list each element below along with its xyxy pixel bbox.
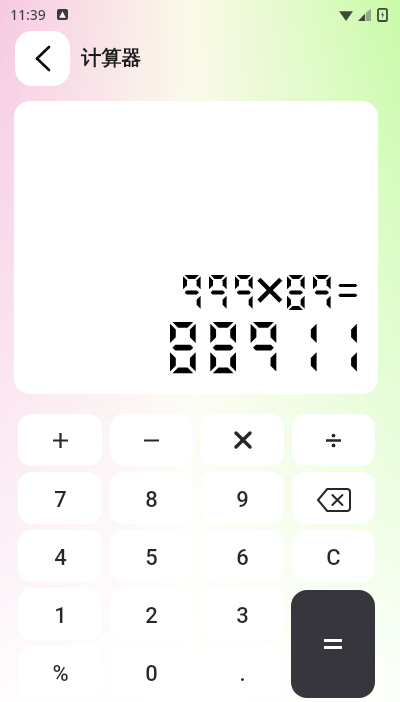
staticText: 0 [145, 661, 158, 687]
staticText: 1 [54, 603, 67, 629]
staticText: 7 [54, 487, 67, 513]
button[interactable]: 2 [110, 588, 193, 640]
button[interactable]: 0 [110, 646, 193, 698]
button[interactable] [110, 414, 193, 466]
button[interactable]: C [292, 530, 375, 582]
button[interactable] [201, 414, 284, 466]
staticText: 2 [145, 603, 158, 629]
staticText: 6 [236, 545, 249, 571]
button[interactable]: Back [15, 31, 70, 86]
staticText: 计算器 [81, 46, 141, 71]
button[interactable]: 9 [201, 472, 284, 524]
staticText: C [326, 545, 341, 571]
button[interactable]: 4 [18, 530, 102, 582]
button[interactable]: . [201, 646, 284, 698]
button[interactable]: 8 [110, 472, 193, 524]
button[interactable]: 1 [18, 588, 102, 640]
button[interactable]: 7 [18, 472, 102, 524]
staticText: 5 [145, 545, 158, 571]
staticText: 8 [145, 487, 158, 513]
button[interactable] [292, 414, 375, 466]
button[interactable]: Equals [291, 590, 375, 698]
staticText: . [239, 661, 246, 687]
staticText: 11:39 [10, 5, 46, 24]
staticText: % [52, 661, 69, 687]
staticText: 3 [236, 603, 249, 629]
button[interactable] [18, 414, 102, 466]
button[interactable]: 6 [201, 530, 284, 582]
button[interactable]: 5 [110, 530, 193, 582]
button[interactable]: % [18, 646, 102, 698]
button[interactable]: 3 [201, 588, 284, 640]
button[interactable] [292, 472, 375, 524]
staticText: 4 [54, 545, 67, 571]
staticText: 9 [236, 487, 249, 513]
